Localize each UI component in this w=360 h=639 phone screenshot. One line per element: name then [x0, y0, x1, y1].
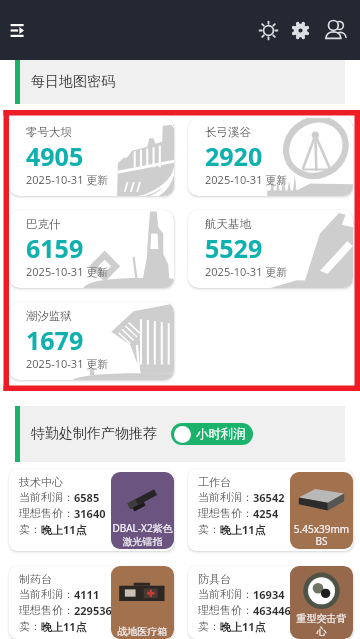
staticText: 卖： — [198, 619, 220, 633]
staticText: 2920 — [205, 139, 263, 173]
button[interactable]: 长弓溪谷 — [188, 118, 353, 196]
staticText: 卖： — [19, 522, 41, 536]
button[interactable]: 航天基地 — [188, 210, 353, 288]
staticText: 潮汐监狱 — [26, 309, 72, 323]
staticText: 长弓溪谷 — [205, 125, 251, 139]
staticText: 理想售价： — [19, 603, 74, 617]
button[interactable]: 零号大坝 — [9, 118, 174, 196]
staticText: 晚上11点 — [220, 522, 266, 537]
button[interactable]: Settings — [283, 13, 317, 47]
staticText: 制药台 — [19, 572, 52, 586]
button[interactable]: Brightness — [251, 13, 285, 47]
staticText: 理想售价： — [198, 603, 253, 617]
staticText: 4254 — [253, 506, 279, 521]
button[interactable]: 小时利润 — [171, 423, 253, 445]
staticText: 4905 — [26, 139, 84, 173]
staticText: 2025-10-31 更新 — [205, 172, 288, 187]
staticText: 航天基地 — [205, 217, 251, 231]
button[interactable]: 防具台 — [188, 566, 353, 639]
button[interactable]: Account — [318, 13, 352, 47]
staticText: 特勤处制作产物推荐 — [31, 425, 157, 443]
staticText: 463446 — [253, 603, 291, 618]
staticText: 理想售价： — [198, 506, 253, 520]
staticText: 229536 — [74, 603, 112, 618]
staticText: 防具台 — [198, 572, 231, 586]
staticText: 16934 — [253, 587, 285, 602]
staticText: 当前利润： — [19, 587, 74, 601]
staticText: DBAL-X2紫色 激光镭指 — [111, 521, 174, 548]
button[interactable]: 工作台 — [188, 469, 353, 551]
staticText: 6159 — [26, 231, 84, 265]
staticText: 当前利润： — [198, 490, 253, 504]
staticText: 6585 — [74, 490, 100, 505]
staticText: 5.45x39mm BS — [290, 522, 353, 548]
button[interactable]: Menu — [0, 14, 33, 47]
button[interactable]: 潮汐监狱 — [9, 302, 174, 380]
staticText: 晚上11点 — [41, 619, 87, 634]
staticText: 31640 — [74, 506, 106, 521]
staticText: 当前利润： — [19, 490, 74, 504]
staticText: 5529 — [205, 231, 263, 265]
staticText: 晚上11点 — [220, 619, 266, 634]
staticText: 2025-10-31 更新 — [205, 264, 288, 279]
staticText: 36542 — [253, 490, 285, 505]
staticText: 技术中心 — [19, 475, 63, 489]
staticText: 卖： — [19, 619, 41, 633]
staticText: 当前利润： — [198, 587, 253, 601]
staticText: 小时利润 — [196, 426, 246, 442]
staticText: 巴克什 — [26, 217, 61, 231]
staticText: 2025-10-31 更新 — [26, 172, 109, 187]
staticText: 工作台 — [198, 475, 231, 489]
button[interactable]: 技术中心 — [9, 469, 174, 551]
staticText: 理想售价： — [19, 506, 74, 520]
staticText: 2025-10-31 更新 — [26, 356, 109, 371]
staticText: 每日地图密码 — [31, 73, 115, 91]
staticText: 晚上11点 — [41, 522, 87, 537]
button[interactable]: 巴克什 — [9, 210, 174, 288]
staticText: 卖： — [198, 522, 220, 536]
staticText: 重型突击背 心 — [290, 612, 353, 638]
staticText: 1679 — [26, 323, 84, 357]
staticText: 零号大坝 — [26, 125, 72, 139]
staticText: 2025-10-31 更新 — [26, 264, 109, 279]
button[interactable]: 制药台 — [9, 566, 174, 639]
staticText: 4111 — [74, 587, 100, 602]
staticText: 战地医疗箱 — [111, 625, 174, 638]
